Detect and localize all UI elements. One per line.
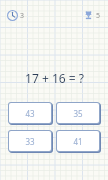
- button[interactable]: 35: [56, 102, 100, 124]
- staticText: 5: [96, 11, 101, 21]
- staticText: 17 + 16 = ?: [25, 70, 84, 86]
- button[interactable]: 33: [8, 130, 52, 152]
- button[interactable]: Score: [82, 10, 102, 21]
- staticText: 35: [73, 108, 83, 119]
- button[interactable]: 43: [8, 102, 52, 124]
- button[interactable]: Time remaining: [6, 10, 26, 21]
- staticText: 3: [20, 11, 25, 21]
- staticText: 33: [25, 136, 35, 147]
- button[interactable]: 41: [56, 130, 100, 152]
- staticText: 41: [73, 136, 83, 147]
- other: Score: [83, 10, 94, 21]
- staticText: 43: [25, 108, 35, 119]
- other: Time remaining: [7, 10, 18, 21]
